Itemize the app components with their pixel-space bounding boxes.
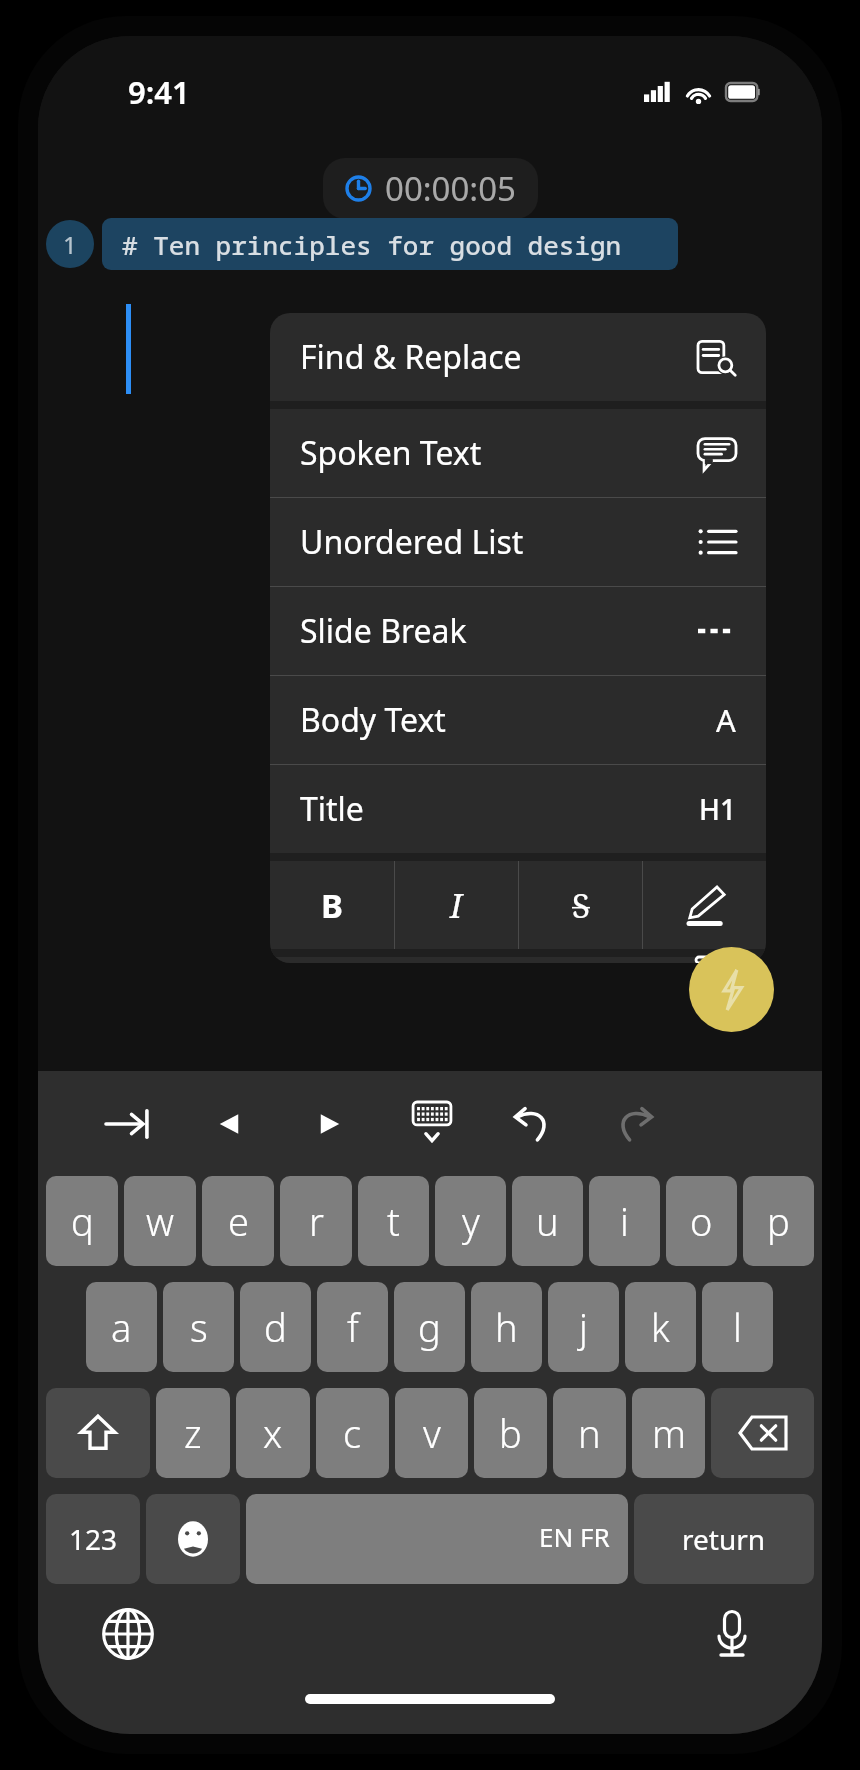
staticText: n — [578, 1407, 601, 1459]
button[interactable]: B — [270, 861, 394, 949]
staticText: p — [767, 1195, 790, 1247]
button[interactable]: Change language — [96, 1602, 160, 1666]
staticText: w — [146, 1195, 174, 1247]
staticText: k — [651, 1301, 670, 1353]
button[interactable]: c — [316, 1388, 389, 1478]
button[interactable]: Slide Break — [270, 587, 766, 675]
button[interactable]: p — [743, 1176, 814, 1266]
button[interactable]: Backspace — [711, 1388, 814, 1478]
button[interactable]: Quick action — [689, 947, 774, 1032]
staticText: c — [343, 1407, 362, 1459]
button[interactable]: Shift — [46, 1388, 150, 1478]
staticText: S — [572, 883, 590, 928]
staticText: y — [462, 1195, 480, 1247]
button[interactable]: Hide keyboard — [394, 1086, 470, 1162]
staticText: Spoken Text — [300, 431, 482, 475]
staticText: x — [263, 1407, 283, 1459]
button[interactable]: g — [394, 1282, 465, 1372]
button[interactable]: Previous — [191, 1086, 267, 1162]
button[interactable]: return — [634, 1494, 814, 1584]
staticText: s — [190, 1301, 208, 1353]
staticText: e — [228, 1195, 249, 1247]
staticText: z — [184, 1407, 202, 1459]
button[interactable]: I — [395, 861, 518, 949]
staticText: A — [716, 699, 736, 741]
button[interactable]: 123 — [46, 1494, 140, 1584]
staticText: m — [652, 1407, 686, 1459]
button[interactable]: EN FR — [246, 1494, 628, 1584]
button[interactable]: d — [240, 1282, 311, 1372]
button[interactable]: 00:00:05 — [323, 158, 538, 219]
staticText: EN FR — [539, 1519, 610, 1554]
button[interactable]: Tab — [90, 1086, 166, 1162]
button[interactable]: Body Text — [270, 676, 766, 764]
button[interactable]: S — [519, 861, 642, 949]
staticText: 123 — [69, 1520, 118, 1558]
staticText: q — [71, 1195, 94, 1247]
button[interactable]: h — [471, 1282, 542, 1372]
button[interactable]: m — [632, 1388, 705, 1478]
button[interactable]: i — [589, 1176, 660, 1266]
button[interactable]: j — [548, 1282, 619, 1372]
staticText: g — [418, 1301, 441, 1353]
button[interactable]: Spoken Text — [270, 409, 766, 497]
button[interactable]: Emoji — [146, 1494, 240, 1584]
staticText: b — [499, 1407, 522, 1459]
button[interactable]: Configure Menu — [270, 957, 766, 963]
staticText: a — [111, 1301, 132, 1353]
button[interactable]: b — [474, 1388, 547, 1478]
staticText: f — [347, 1301, 359, 1353]
button[interactable]: r — [280, 1176, 352, 1266]
staticText: Unordered List — [300, 520, 524, 564]
button[interactable]: e — [202, 1176, 274, 1266]
button[interactable]: l — [702, 1282, 773, 1372]
button[interactable]: x — [236, 1388, 310, 1478]
staticText: r — [309, 1195, 324, 1247]
button[interactable]: k — [625, 1282, 696, 1372]
button[interactable]: Voice input — [700, 1602, 764, 1666]
button[interactable]: s — [163, 1282, 234, 1372]
staticText: 00:00:05 — [385, 166, 516, 211]
staticText: # Ten principles for good design — [122, 227, 622, 262]
staticText: B — [321, 883, 343, 928]
button[interactable]: # Ten principles for good design — [102, 218, 678, 270]
button[interactable]: w — [124, 1176, 196, 1266]
button[interactable]: z — [156, 1388, 230, 1478]
staticText: o — [690, 1195, 713, 1247]
staticText: Slide Break — [300, 609, 467, 653]
staticText: H1 — [699, 790, 736, 828]
staticText: v — [423, 1407, 441, 1459]
staticText: u — [536, 1195, 559, 1247]
button[interactable]: y — [435, 1176, 506, 1266]
button[interactable]: o — [666, 1176, 737, 1266]
button[interactable]: t — [358, 1176, 429, 1266]
staticText: 1 — [63, 228, 77, 261]
staticText: d — [264, 1301, 287, 1353]
staticText: return — [682, 1520, 766, 1558]
button[interactable]: Title — [270, 765, 766, 853]
staticText: t — [387, 1195, 400, 1247]
button[interactable]: f — [317, 1282, 388, 1372]
staticText: Body Text — [300, 698, 446, 742]
staticText: 9:41 — [128, 71, 190, 113]
staticText: Title — [300, 787, 364, 831]
button[interactable]: Find & Replace — [270, 313, 766, 401]
button[interactable]: Unordered List — [270, 498, 766, 586]
staticText: i — [620, 1195, 629, 1247]
button[interactable]: q — [46, 1176, 118, 1266]
button[interactable]: u — [512, 1176, 583, 1266]
button[interactable]: v — [395, 1388, 468, 1478]
staticText: j — [579, 1301, 588, 1353]
staticText: h — [495, 1301, 518, 1353]
button[interactable]: Undo — [495, 1086, 571, 1162]
button[interactable]: Highlight — [643, 861, 766, 949]
button[interactable]: Redo — [596, 1086, 672, 1162]
button[interactable]: Next — [292, 1086, 368, 1162]
button[interactable]: a — [86, 1282, 157, 1372]
staticText: l — [733, 1301, 742, 1353]
staticText: I — [450, 883, 463, 928]
button[interactable]: n — [553, 1388, 626, 1478]
staticText: Find & Replace — [300, 335, 522, 379]
